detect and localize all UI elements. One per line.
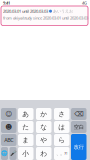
staticText: 🎤 [9,150,16,157]
staticText: た [22,123,29,131]
button[interactable]: 改行 [71,134,86,160]
button[interactable]: ☻ [1,121,16,133]
staticText: わ [40,149,47,158]
button[interactable]: や [36,134,51,146]
staticText: from akiya/study since 2020-03-01 until … [3,15,88,21]
button[interactable]: ⌫ [71,108,86,120]
staticText: か [40,110,47,118]
staticText: 、。?! [56,151,67,156]
button[interactable]: ら [54,134,69,146]
button[interactable]: は [54,121,69,133]
staticText: ABC [4,136,13,144]
staticText: 2020-03-01 until 2020-03-03 [3,8,48,14]
staticText: ま [22,136,29,144]
button[interactable]: 小 [18,147,33,160]
staticText: な [40,123,47,131]
button[interactable]: 、。?! [54,147,69,160]
staticText: 空白 [74,124,84,130]
button[interactable]: ☺ [1,108,16,120]
staticText: ☺ [5,110,12,118]
button[interactable]: ABC [1,134,16,146]
staticText: ⌫ [74,110,83,118]
button[interactable]: さ [54,108,69,120]
staticText: 改行 [74,144,84,150]
button[interactable]: わ [36,147,51,160]
staticText: は [58,123,65,131]
staticText: ☻ [5,123,12,131]
button[interactable]: か [36,108,51,120]
button[interactable]: 🎤 [9,147,16,160]
button[interactable]: 🌐 [1,147,8,160]
staticText: あ [22,110,29,118]
staticText: や [40,136,47,144]
staticText: 4G [82,0,87,6]
button[interactable]: た [18,121,33,133]
staticText: 小 [22,149,29,158]
staticText: ら [58,136,65,144]
button[interactable]: ま [18,134,33,146]
staticText: あいうえお [53,9,73,14]
staticText: さ [58,110,65,118]
staticText: 9:41 [3,0,10,6]
button[interactable]: 空白 [71,121,86,133]
button[interactable]: な [36,121,51,133]
staticText: 🌐 [1,150,8,157]
button[interactable]: あ [18,108,33,120]
